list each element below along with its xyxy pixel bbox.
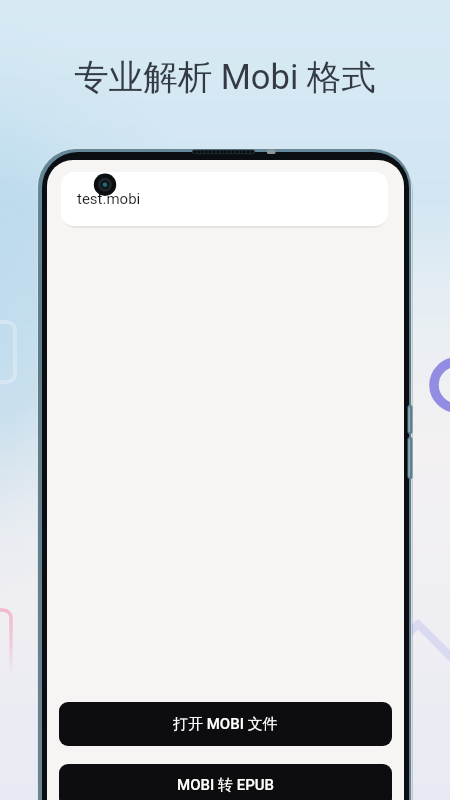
- button[interactable]: test.mobi: [61, 172, 388, 226]
- staticText: test.mobi: [77, 190, 141, 208]
- staticText: MOBI 转 EPUB: [177, 776, 274, 795]
- staticText: 专业解析 Mobi 格式: [0, 56, 450, 99]
- button[interactable]: 打开 MOBI 文件: [59, 702, 392, 746]
- button[interactable]: MOBI 转 EPUB: [59, 764, 392, 800]
- staticText: 打开 MOBI 文件: [173, 715, 278, 734]
